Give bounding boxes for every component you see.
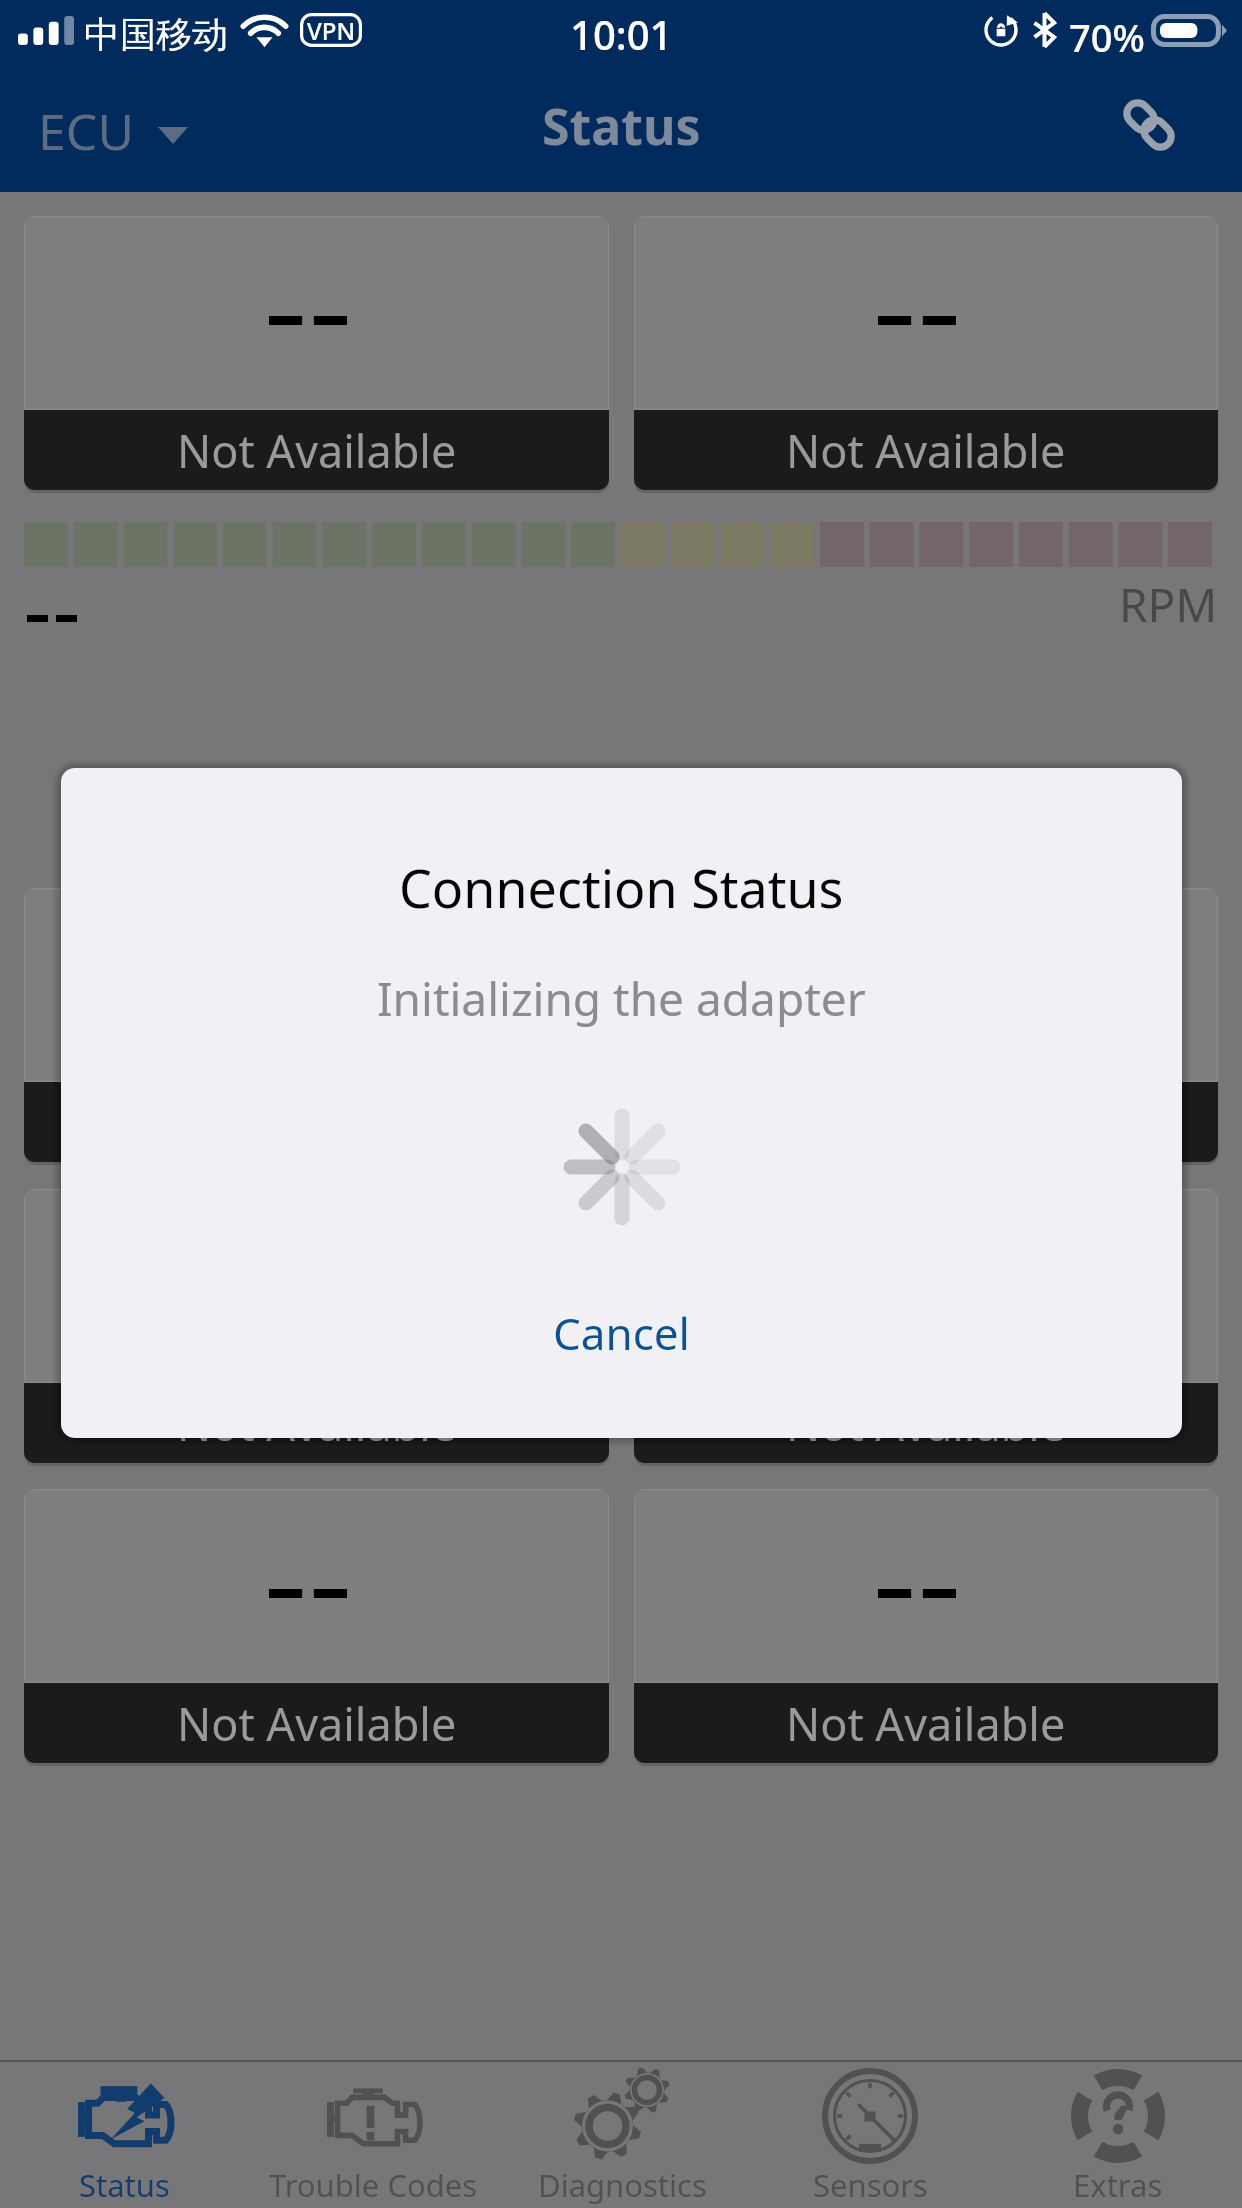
staticText: 70% [1069,11,1145,63]
button[interactable]: Status [0,2062,249,2208]
button[interactable]: Not Available [634,1189,1218,1463]
button[interactable]: Trouble Codes [249,2062,498,2208]
staticText: ECU [38,97,134,165]
staticText: Not Available [177,1393,457,1454]
staticText: RPM [1119,573,1218,636]
staticText: Status [79,2164,170,2206]
button[interactable]: Not Available [24,888,609,1162]
staticText: Initializing the adapter [377,967,866,1030]
staticText: Diagnostics [538,2164,707,2206]
staticText: 10:01 [570,7,673,61]
staticText: VPN [307,14,356,47]
button[interactable]: ECU [32,70,194,192]
button[interactable]: Not Available [24,1189,609,1463]
staticText: Not Available [177,420,457,481]
staticText: Not Available [177,1693,457,1754]
staticText: 中国移动 [84,12,228,57]
staticText: Sensors [813,2164,928,2206]
button[interactable]: Not Available [634,216,1218,490]
staticText: Trouble Codes [269,2164,478,2206]
button[interactable]: Not Available [634,1489,1218,1763]
staticText: Connection Status [399,852,844,923]
button[interactable]: Not Available [634,888,1218,1162]
staticText: Not Available [786,1693,1066,1754]
button[interactable]: Not Available [24,216,609,490]
button[interactable]: Cancel [483,1289,760,1377]
staticText: Extras [1073,2164,1163,2206]
button[interactable]: Diagnostics [498,2062,746,2208]
staticText: Not Available [786,420,1066,481]
staticText: Not Available [786,1393,1066,1454]
staticText: Cancel [553,1303,690,1363]
button[interactable]: Extras [994,2062,1242,2208]
button[interactable]: Not Available [24,1489,609,1763]
staticText: Status [542,92,701,160]
button[interactable]: Connect adapter [1104,90,1194,160]
button[interactable]: Sensors [746,2062,994,2208]
